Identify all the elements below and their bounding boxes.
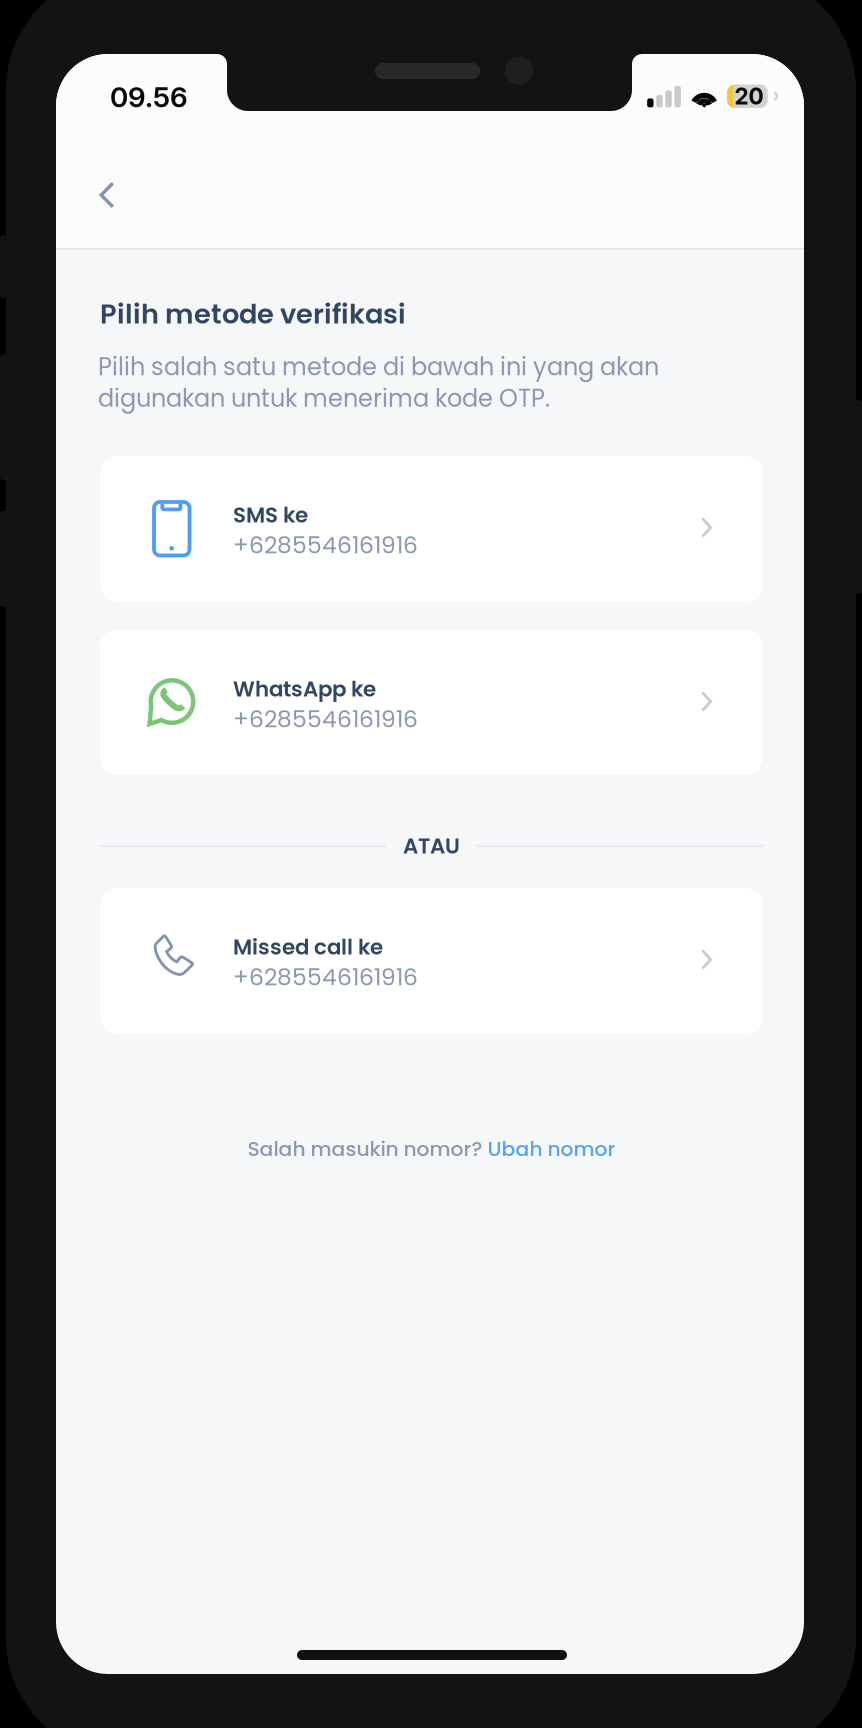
button[interactable]: Back bbox=[78, 166, 136, 224]
staticText: Salah masukin nomor? bbox=[247, 1135, 487, 1163]
staticText: digunakan untuk menerima kode OTP. bbox=[98, 382, 550, 415]
button[interactable]: Missed call ke bbox=[100, 888, 763, 1033]
staticText: +6285546161916 bbox=[233, 961, 418, 994]
staticText: 20 bbox=[734, 82, 763, 110]
staticText: 09.56 bbox=[110, 80, 188, 114]
staticText: WhatsApp ke bbox=[233, 674, 376, 704]
staticText: ATAU bbox=[403, 831, 460, 861]
button[interactable]: WhatsApp ke bbox=[100, 630, 763, 775]
staticText: Pilih salah satu metode di bawah ini yan… bbox=[98, 350, 659, 384]
button[interactable]: SMS ke bbox=[100, 456, 763, 601]
staticText: +6285546161916 bbox=[233, 703, 418, 736]
staticText: Missed call ke bbox=[233, 932, 383, 962]
staticText: +6285546161916 bbox=[233, 529, 418, 562]
staticText: SMS ke bbox=[233, 500, 308, 530]
staticText: Pilih metode verifikasi bbox=[100, 295, 406, 333]
button[interactable]: Salah masukin nomor? bbox=[100, 1136, 763, 1162]
staticText: Ubah nomor bbox=[487, 1135, 615, 1163]
